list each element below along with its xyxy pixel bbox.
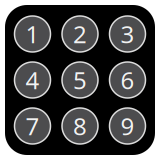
button[interactable]: 5 [62,62,98,98]
staticText: 8 [73,110,87,142]
staticText: 9 [120,110,134,142]
button[interactable]: 7 [14,108,50,144]
staticText: 2 [73,18,87,50]
staticText: 6 [120,64,134,96]
staticText: 5 [73,64,87,96]
button[interactable]: 3 [109,16,145,52]
staticText: 1 [25,18,39,50]
button[interactable]: 6 [109,62,145,98]
button[interactable]: 4 [14,62,50,98]
button[interactable]: 8 [62,108,98,144]
staticText: 4 [25,64,39,96]
button[interactable]: 1 [14,16,50,52]
staticText: 7 [25,110,39,142]
button[interactable]: 2 [62,16,98,52]
staticText: 3 [120,18,134,50]
button[interactable]: 9 [109,108,145,144]
